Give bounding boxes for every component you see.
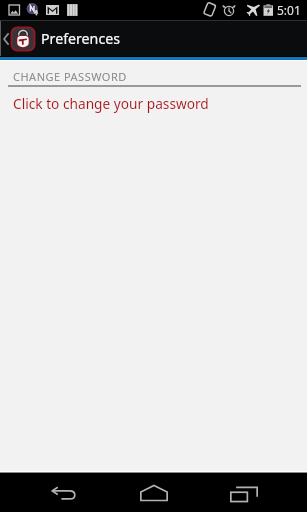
- staticText: CHANGE PASSWORD: [13, 69, 127, 84]
- button[interactable]: Navigate up: [0, 21, 36, 56]
- staticText: Click to change your password: [13, 94, 209, 113]
- staticText: 5:01: [277, 2, 301, 18]
- button[interactable]: Click to change your password: [0, 91, 307, 119]
- staticText: Preferences: [41, 29, 120, 48]
- button[interactable]: Recent apps: [225, 480, 263, 508]
- button[interactable]: Home: [134, 479, 173, 507]
- button[interactable]: Back: [45, 479, 83, 507]
